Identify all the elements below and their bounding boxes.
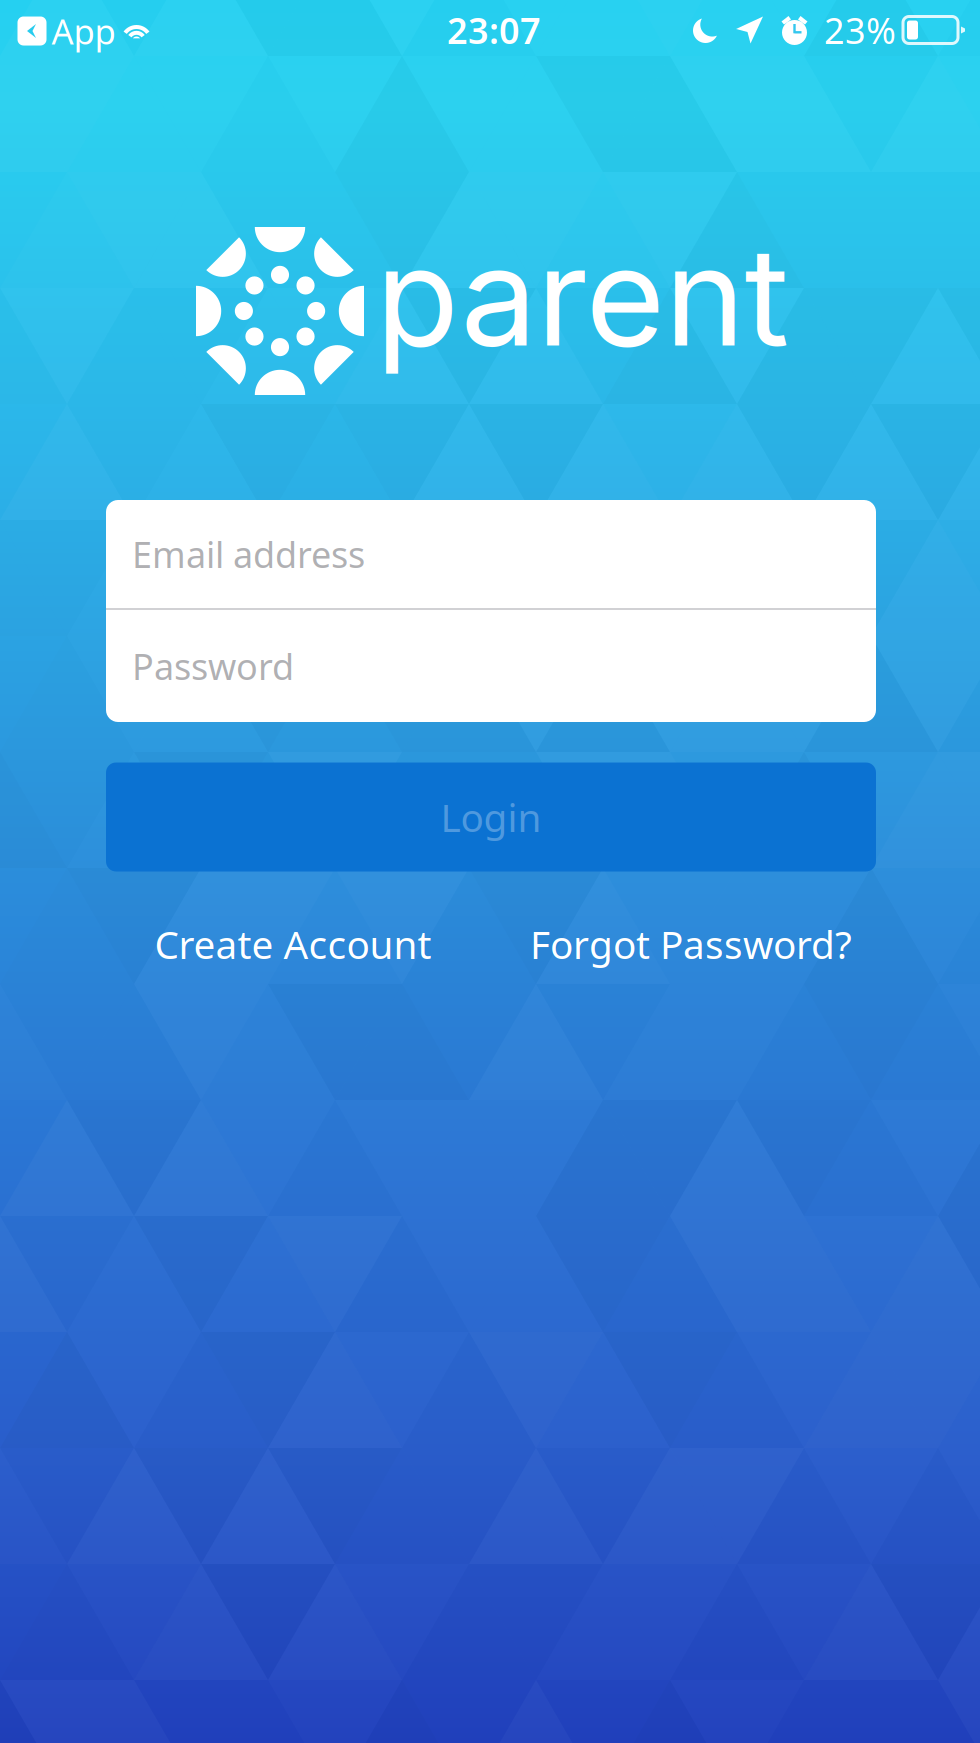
staticText: Forgot Password?: [530, 918, 852, 970]
button[interactable]: Create Account: [136, 904, 449, 984]
staticText: parent: [375, 214, 788, 378]
staticText: Login: [440, 791, 541, 843]
staticText: Create Account: [154, 918, 431, 970]
button[interactable]: Forgot Password?: [512, 904, 870, 984]
staticText: App: [51, 8, 115, 54]
staticText: 23:07: [447, 6, 541, 54]
button[interactable]: Back to App: [15, 5, 154, 57]
button[interactable]: Login: [106, 762, 876, 871]
staticText: Password: [132, 642, 294, 690]
staticText: 23%: [824, 6, 896, 54]
staticText: Email address: [132, 530, 365, 578]
